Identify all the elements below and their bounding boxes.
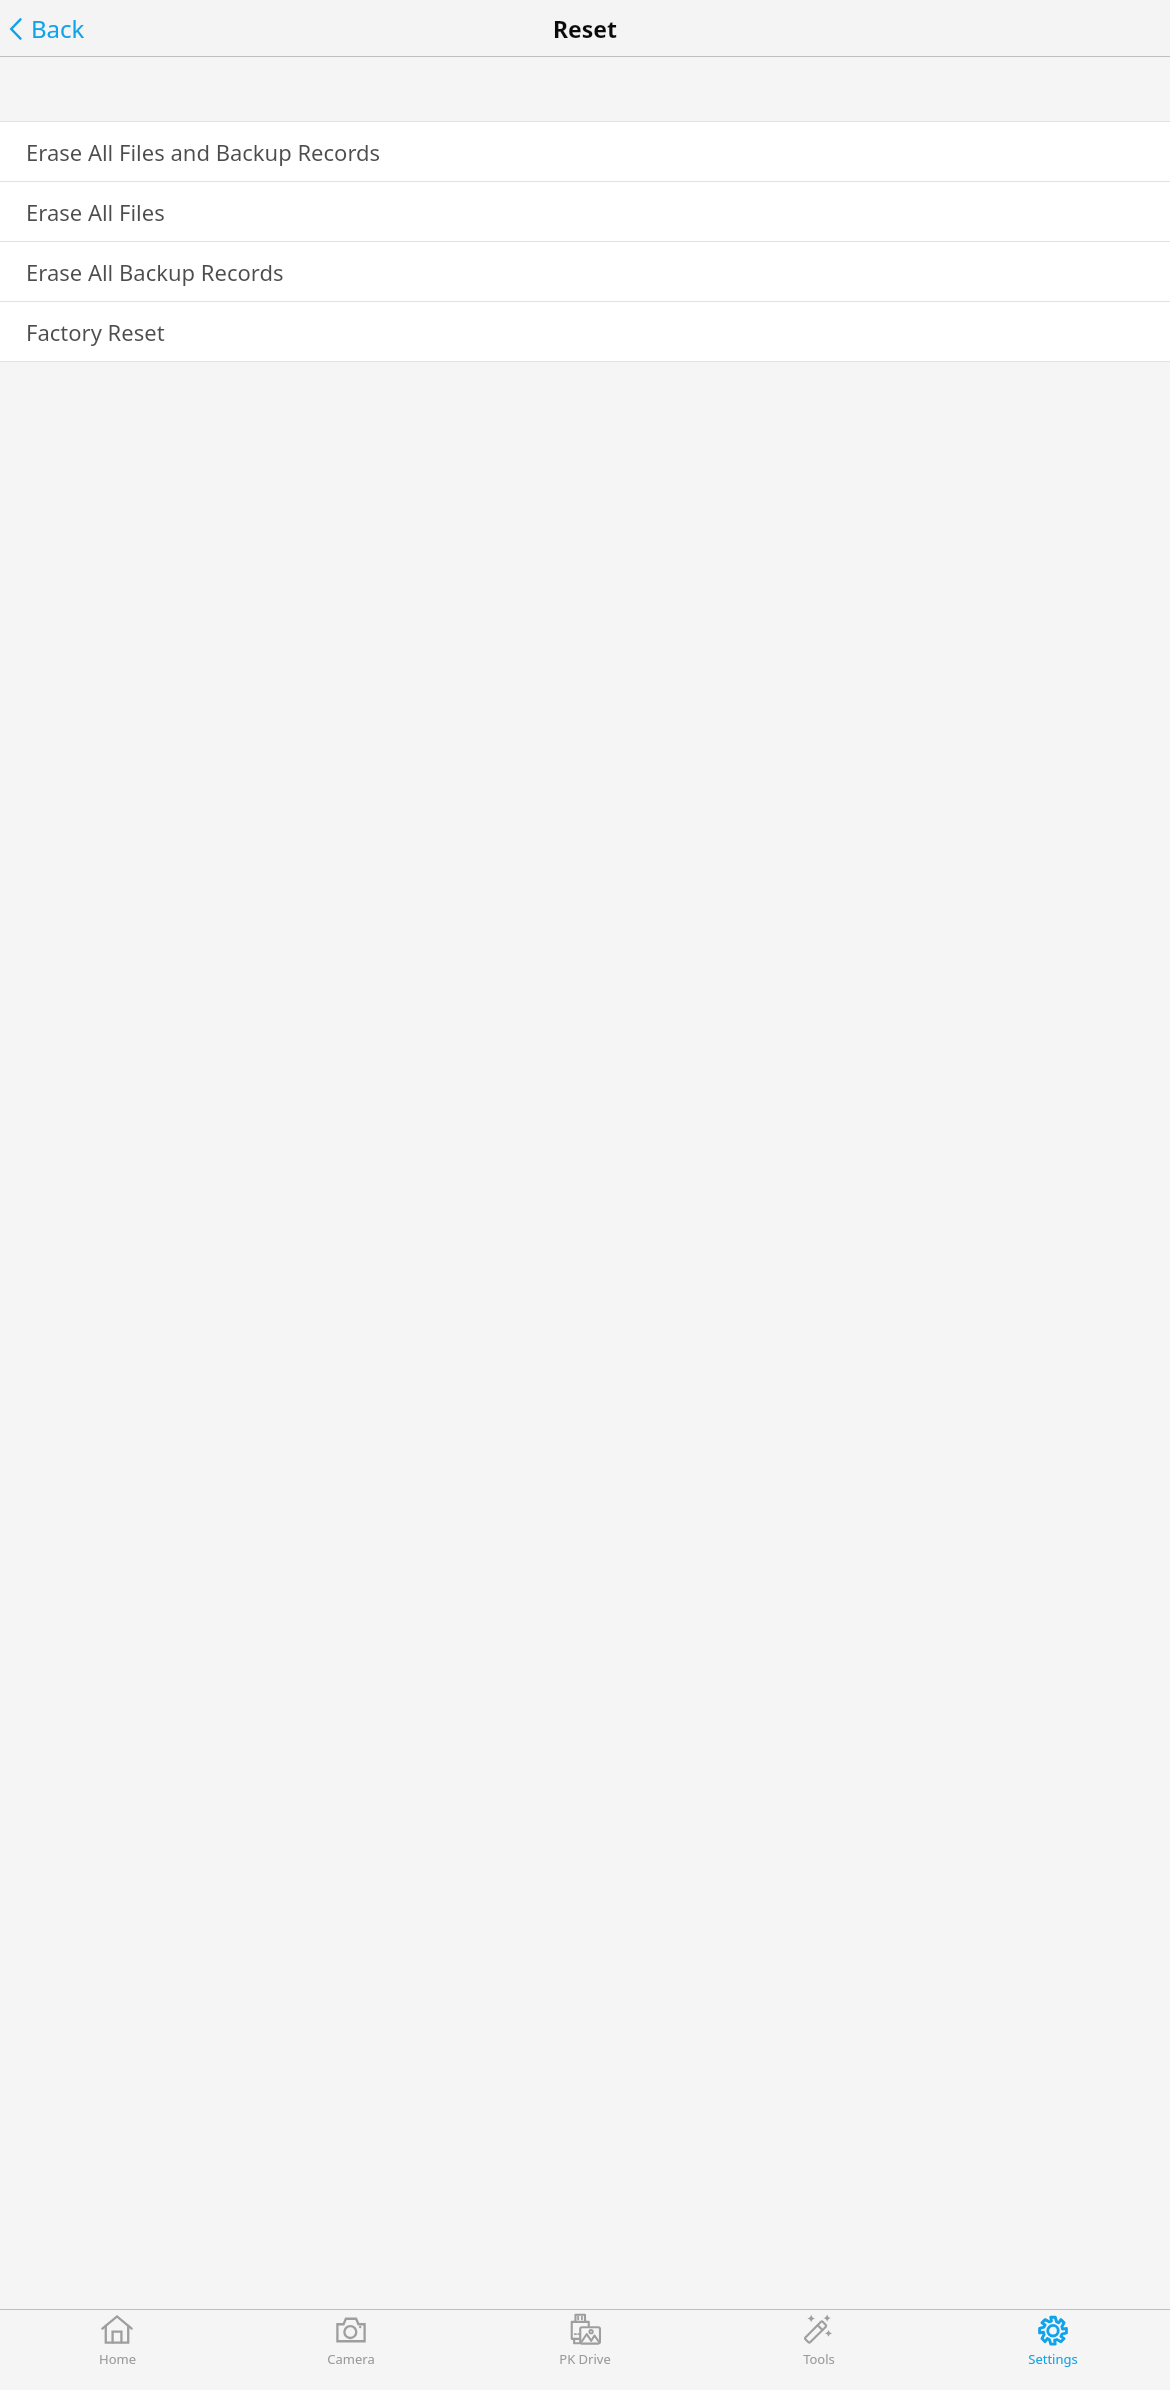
button[interactable]: Erase All Files and Backup Records xyxy=(0,122,1170,181)
button[interactable]: Factory Reset xyxy=(0,302,1170,361)
button[interactable]: Camera xyxy=(234,2310,468,2390)
button[interactable]: Home xyxy=(0,2310,234,2390)
staticText: Tools xyxy=(803,2350,835,2368)
staticText: Settings xyxy=(1028,2350,1078,2368)
button[interactable]: Erase All Backup Records xyxy=(0,242,1170,301)
staticText: Erase All Files and Backup Records xyxy=(26,137,381,167)
staticText: PK Drive xyxy=(559,2350,611,2368)
button[interactable]: PK Drive xyxy=(468,2310,702,2390)
staticText: Erase All Files xyxy=(26,197,165,227)
staticText: Home xyxy=(99,2350,136,2368)
staticText: Erase All Backup Records xyxy=(26,257,284,287)
staticText: Back xyxy=(31,12,85,45)
staticText: Factory Reset xyxy=(26,317,165,347)
button[interactable]: Settings xyxy=(936,2310,1170,2390)
button[interactable]: Erase All Files xyxy=(0,182,1170,241)
button[interactable]: Tools xyxy=(702,2310,936,2390)
button[interactable]: Back xyxy=(6,6,88,51)
staticText: Reset xyxy=(553,13,618,44)
staticText: Camera xyxy=(327,2350,375,2368)
